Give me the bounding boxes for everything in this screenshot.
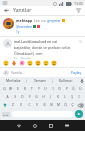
staticText: L (64, 95, 66, 99)
staticText: Tamam (34, 78, 46, 83)
staticText: 1y (14, 57, 18, 59)
staticText: Yanıtlar (13, 7, 32, 14)
staticText: O (58, 87, 61, 91)
button[interactable]: S (11, 94, 19, 100)
button[interactable]: V (33, 102, 41, 108)
button[interactable]: O (56, 86, 63, 92)
button[interactable]: Ö (62, 102, 69, 108)
button[interactable]: Back (11, 120, 27, 131)
button[interactable]: X (17, 102, 25, 108)
staticText: Ü (79, 87, 82, 91)
button[interactable]: Emoji 2 (19, 60, 25, 66)
button[interactable]: Emoji 6 (51, 60, 57, 66)
button[interactable]: Ç (69, 102, 76, 108)
staticText: I (78, 95, 80, 99)
staticText: Merhaba (6, 78, 21, 83)
staticText: A (6, 95, 9, 99)
button[interactable]: Tamam (27, 77, 52, 84)
button[interactable]: Switch keyboard (59, 120, 75, 131)
button[interactable]: Emoji 1 (11, 60, 17, 66)
staticText: S (14, 95, 16, 99)
staticText: H (42, 95, 45, 99)
staticText: mehtapp (16, 18, 33, 23)
staticText: U (44, 87, 47, 91)
staticText: D (21, 95, 24, 99)
staticText: Yanıtla... (11, 70, 25, 75)
button[interactable]: Paylaş (71, 70, 82, 75)
staticText: E (17, 87, 19, 91)
button[interactable]: D (19, 94, 26, 100)
button[interactable]: E (14, 86, 21, 92)
button[interactable]: Recent apps (43, 120, 59, 131)
staticText: Ğ (72, 87, 75, 91)
staticText: P (66, 87, 68, 91)
button[interactable]: M (55, 102, 62, 108)
staticText: K (57, 95, 59, 99)
staticText: Yanıtla (21, 57, 31, 59)
button[interactable]: N (48, 102, 55, 108)
button[interactable]: Emoji 0 (3, 60, 9, 66)
button[interactable]: F (26, 94, 33, 100)
button[interactable]: Yanıtla... (11, 68, 71, 77)
button[interactable]: B (41, 102, 48, 108)
staticText: 13:05 (74, 1, 83, 6)
staticText: T (31, 87, 33, 91)
button[interactable]: I (49, 86, 56, 92)
button[interactable]: C (25, 102, 33, 108)
staticText: V (36, 103, 38, 107)
staticText: Kullanıcı (59, 78, 73, 83)
staticText: J (50, 95, 51, 99)
button[interactable]: R (21, 86, 28, 92)
button[interactable]: meLLuoldüonulsod en uzi (0, 37, 85, 59)
staticText: F (29, 95, 31, 99)
button[interactable]: Send (75, 110, 83, 118)
button[interactable]: P (63, 86, 70, 92)
staticText: Ş (71, 95, 73, 99)
staticText: Z (12, 103, 14, 107)
button[interactable]: Back (3, 7, 10, 14)
button[interactable]: Q (1, 86, 7, 92)
button[interactable]: Emoji 3 (27, 60, 33, 66)
button[interactable]: Symbols (2, 112, 10, 117)
button[interactable]: Emoji 5 (43, 60, 49, 66)
button[interactable]: L (61, 94, 68, 100)
button[interactable]: I (75, 94, 82, 100)
staticText: Ö (64, 103, 67, 107)
button[interactable]: J (47, 94, 54, 100)
staticText: nm (41, 19, 46, 23)
button[interactable]: T (28, 86, 35, 92)
staticText: Lee (34, 18, 40, 23)
staticText: 1y (16, 30, 20, 34)
button[interactable]: Ş (68, 94, 75, 100)
button[interactable]: A (3, 94, 11, 100)
button[interactable]: Ğ (70, 86, 77, 92)
button[interactable]: Backspace (76, 102, 84, 108)
staticText: @evreden (16, 24, 32, 29)
button[interactable]: Y (35, 86, 42, 92)
button[interactable]: Home (27, 120, 43, 131)
button[interactable]: K (54, 94, 61, 100)
staticText: I (52, 87, 54, 91)
button[interactable]: Emoji 4 (35, 60, 41, 66)
button[interactable]: Ü (77, 86, 84, 92)
staticText: M (57, 103, 60, 107)
staticText: meLLuoldüonulsod en uzi (14, 39, 58, 44)
button[interactable]: mehtapp (0, 16, 85, 36)
button[interactable]: Shift (1, 102, 9, 108)
button[interactable]: Voice input (78, 77, 85, 84)
button[interactable]: Kullanıcı (53, 77, 78, 84)
button[interactable]: W (7, 86, 14, 92)
staticText: Paylaş (71, 70, 82, 75)
button[interactable]: H (40, 94, 47, 100)
button[interactable]: Like (78, 39, 82, 43)
staticText: X (20, 103, 22, 107)
button[interactable]: G (33, 94, 40, 100)
staticText: Q (3, 87, 6, 91)
button[interactable]: Merhaba (0, 77, 26, 84)
staticText: N (50, 103, 53, 107)
staticText: başardılar, dönde ve prafsanı ońlai (14, 45, 71, 50)
button[interactable]: U (42, 86, 49, 92)
button[interactable]: Z (9, 102, 17, 108)
button[interactable]: Filter (75, 7, 82, 14)
